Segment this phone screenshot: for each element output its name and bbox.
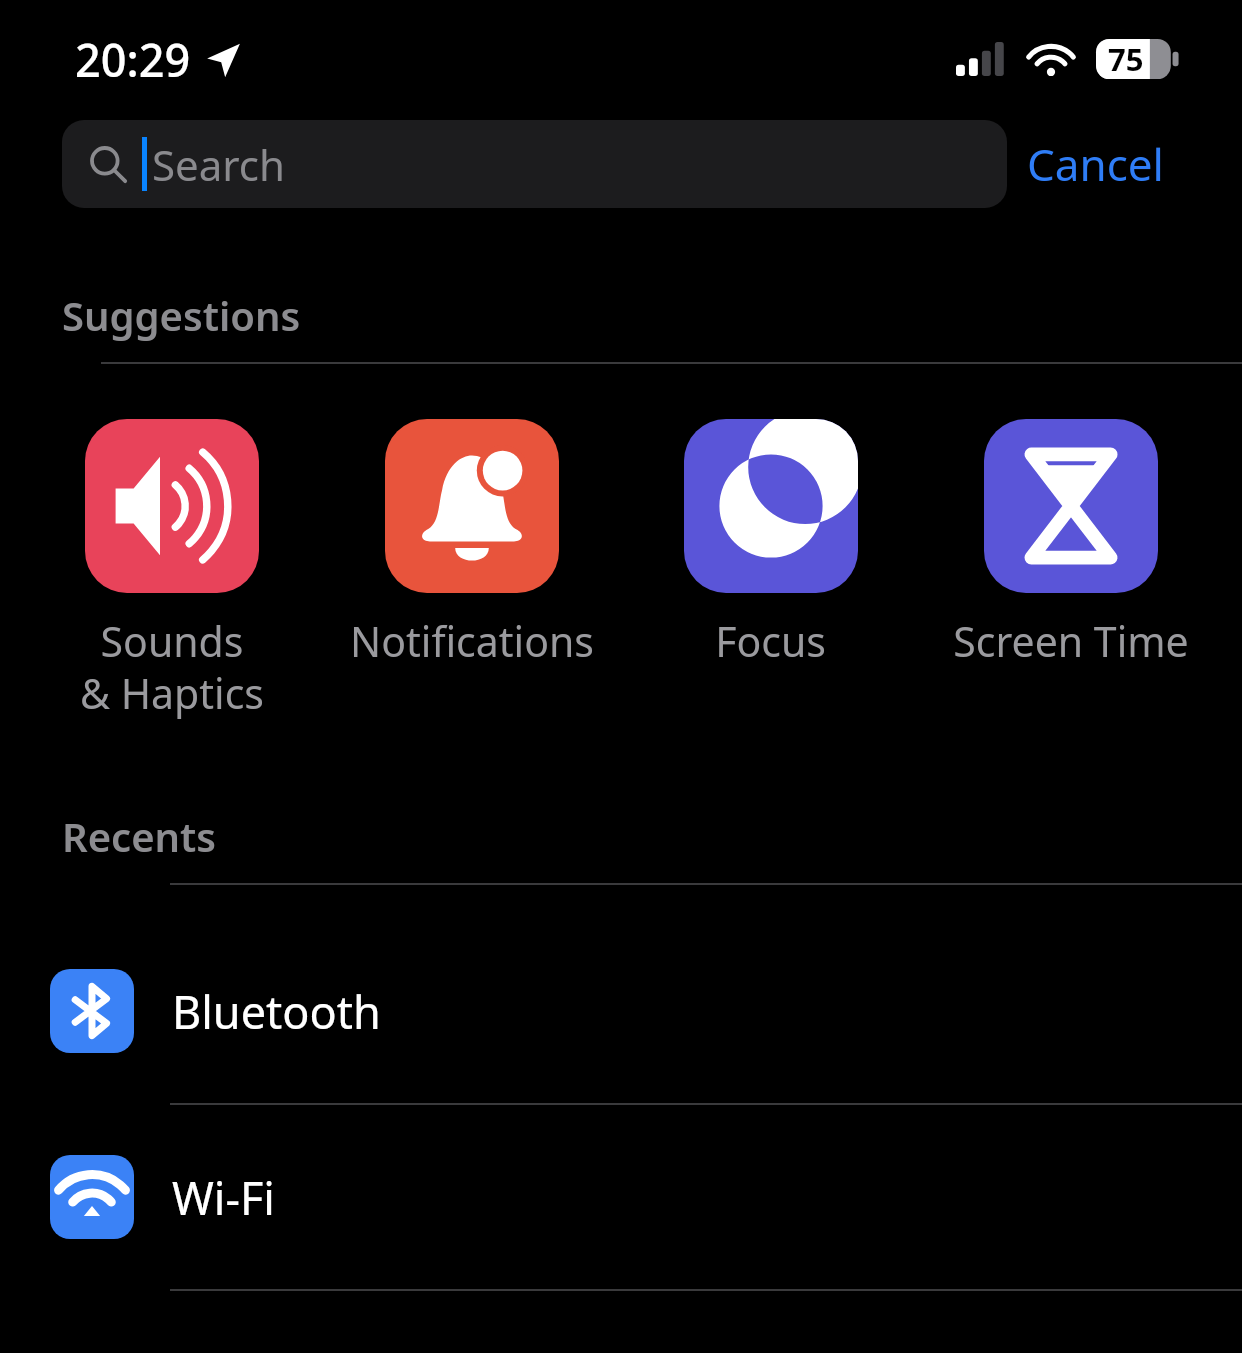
staticText: Notifications [350,613,594,669]
button[interactable]: Notifications [344,419,599,669]
staticText: Sounds & Haptics [80,613,264,721]
staticText: Search [152,136,285,193]
staticText: Wi-Fi [172,1167,275,1228]
staticText: Screen Time [953,613,1189,669]
staticText: 75 [1108,38,1144,80]
button[interactable]: Bluetooth [0,919,1242,1103]
button[interactable]: Cancel [1007,124,1184,204]
staticText: Cancel [1027,134,1164,194]
staticText: Recents [62,809,217,863]
button[interactable]: Focus [643,419,898,669]
staticText: Focus [715,613,826,669]
staticText: Bluetooth [172,981,381,1042]
staticText: 20:29 [75,29,191,90]
button[interactable]: Search [62,120,1007,208]
staticText: Suggestions [62,288,301,342]
button[interactable]: Sounds & Haptics [44,419,299,721]
button[interactable]: Wi-Fi [0,1105,1242,1289]
other: Search [88,144,128,184]
button[interactable]: Screen Time [943,419,1198,669]
